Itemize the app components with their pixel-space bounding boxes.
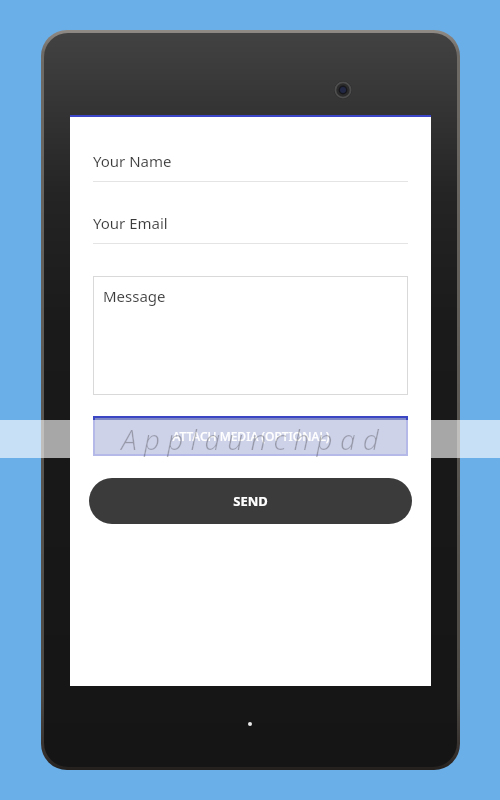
button[interactable]: Message (93, 276, 408, 395)
staticText: ATTACH MEDIA (OPTIONAL) (172, 428, 330, 444)
staticText: Your Name (93, 151, 172, 171)
button[interactable]: ATTACH MEDIA (OPTIONAL) (93, 416, 408, 456)
button[interactable]: SEND (89, 478, 412, 524)
button[interactable]: Your Name (93, 151, 408, 182)
staticText: SEND (233, 492, 268, 510)
staticText: A p p l a u n c h p a d (121, 420, 379, 458)
button[interactable]: Your Email (93, 213, 408, 244)
staticText: Your Email (93, 213, 168, 233)
staticText: Message (103, 286, 166, 306)
